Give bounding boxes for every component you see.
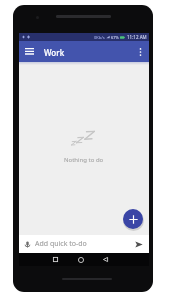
button[interactable]: Recent apps <box>50 254 61 265</box>
button[interactable]: Back <box>100 254 111 265</box>
button[interactable]: More options <box>134 46 146 58</box>
button[interactable]: Open navigation menu <box>22 44 37 59</box>
staticText: 11:12 AM <box>127 34 147 40</box>
button[interactable]: Add task <box>123 209 143 229</box>
staticText: 67% <box>111 35 119 40</box>
staticText: Nothing to do <box>64 156 104 164</box>
button[interactable]: Voice input <box>22 239 33 250</box>
button[interactable]: Home <box>75 254 86 265</box>
staticText: Add quick to-do <box>35 239 87 249</box>
staticText: 0Kb/s <box>94 35 105 40</box>
staticText: Work <box>44 47 65 58</box>
button[interactable]: Send <box>133 239 144 250</box>
